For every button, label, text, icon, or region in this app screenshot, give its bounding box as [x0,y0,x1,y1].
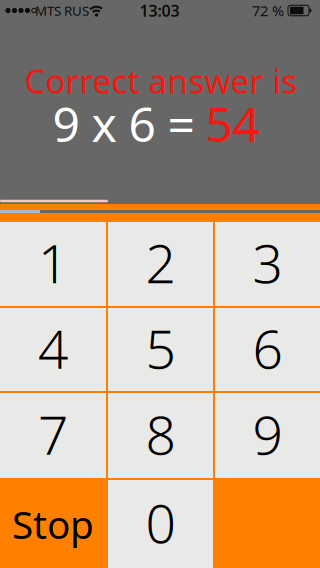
staticText: 0 [145,487,175,558]
button[interactable]: 2 [108,222,213,306]
button[interactable]: 9 [215,393,320,478]
staticText: 8 [145,399,175,469]
staticText: Stop [12,498,94,550]
staticText: 9 x 6 = [52,92,194,155]
button[interactable]: 4 [0,308,106,391]
staticText: 7 [38,399,68,469]
button[interactable]: 1 [0,222,106,306]
staticText: 9 [252,399,282,469]
staticText: 1 [38,227,68,298]
staticText: 54 [205,92,259,155]
staticText: 3 [252,227,282,298]
button[interactable]: 0 [108,480,213,568]
staticText: 13:03 [139,0,179,21]
staticText: MTS RUS [35,2,89,19]
button[interactable]: 5 [108,308,213,391]
staticText: 72 % [252,1,284,20]
button[interactable]: Stop [0,480,106,568]
staticText: 4 [38,313,68,383]
staticText: 2 [145,227,175,298]
button[interactable]: 8 [108,393,213,478]
staticText: Correct answer is [24,58,297,103]
staticText: 6 [252,313,282,383]
button[interactable]: 3 [215,222,320,306]
button[interactable]: 7 [0,393,106,478]
staticText: 5 [145,313,175,383]
button[interactable]: 6 [215,308,320,391]
